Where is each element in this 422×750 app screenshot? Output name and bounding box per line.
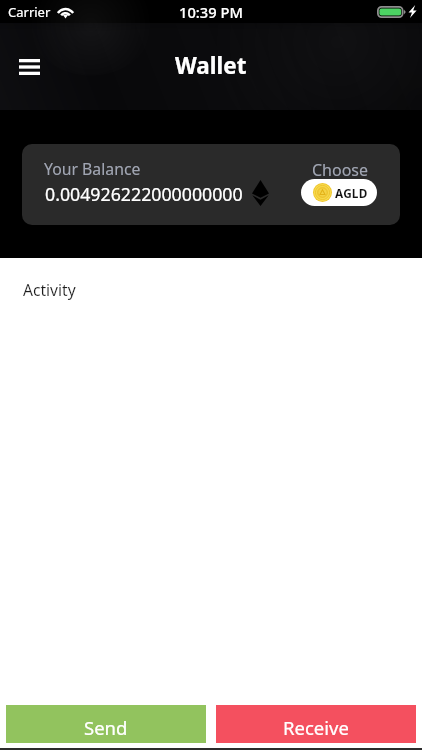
staticText: 10:39 PM <box>179 2 243 22</box>
staticText: AGLD <box>335 185 368 201</box>
staticText: Send <box>84 715 128 740</box>
staticText: 0.004926222000000000 <box>45 182 243 206</box>
staticText: Activity <box>23 279 76 300</box>
button[interactable]: Menu <box>9 47 49 87</box>
staticText: Choose <box>312 159 369 181</box>
button[interactable]: Send <box>6 705 206 743</box>
button[interactable]: AGLD <box>301 179 377 206</box>
button[interactable]: Receive <box>216 705 416 743</box>
staticText: Wallet <box>175 50 247 81</box>
staticText: Receive <box>283 715 349 740</box>
staticText: Your Balance <box>44 158 141 180</box>
staticText: Carrier <box>8 3 51 21</box>
